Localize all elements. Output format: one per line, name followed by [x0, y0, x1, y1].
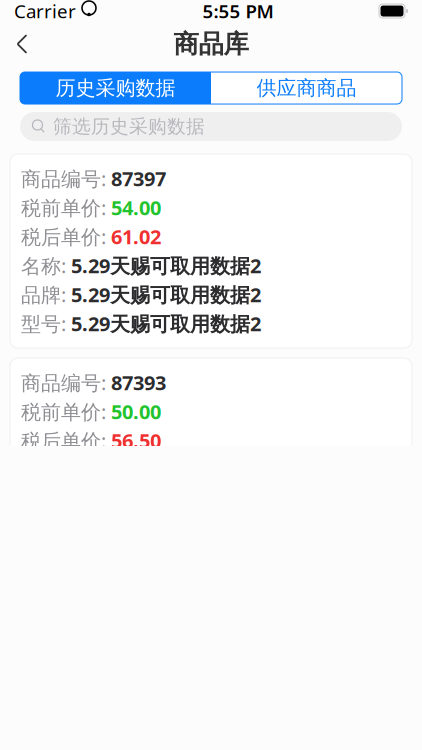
staticText: 61.02 — [111, 223, 161, 250]
staticText: 筛选历史采购数据 — [53, 115, 205, 138]
staticText: 87393 — [111, 369, 166, 396]
button[interactable]: 商品编号: — [10, 358, 412, 552]
staticText: 名称: — [21, 252, 66, 279]
staticText: 5.29天赐可取用数据2 — [71, 281, 261, 308]
staticText: 5.29天赐可取用数据2 — [71, 310, 261, 337]
staticText: 税前单价: — [21, 398, 106, 425]
staticText: 54.00 — [111, 194, 161, 221]
staticText: 商品编号: — [21, 165, 106, 192]
staticText: 品牌: — [21, 281, 66, 308]
staticText: 型号: — [21, 310, 66, 337]
staticText: 税后单价: — [21, 427, 106, 454]
staticText: 商品库 — [173, 28, 248, 59]
staticText: 56.50 — [111, 427, 161, 454]
button[interactable]: 供应商商品 — [211, 72, 402, 104]
button[interactable]: 筛选历史采购数据 — [20, 112, 402, 141]
staticText: 税后单价: — [21, 223, 106, 250]
staticText: 5:55 PM — [202, 0, 273, 23]
staticText: 5.29天赐可取用数据2 — [71, 252, 261, 279]
button[interactable]: 历史采购数据 — [20, 72, 211, 104]
staticText: 商品编号: — [21, 369, 106, 396]
staticText: 历史采购数据 — [55, 76, 175, 100]
staticText: 87397 — [111, 165, 166, 192]
button[interactable]: Back — [0, 24, 44, 64]
staticText: 50.00 — [111, 398, 161, 425]
button[interactable]: 商品编号: — [10, 154, 412, 348]
staticText: 税前单价: — [21, 194, 106, 221]
staticText: Carrier — [14, 0, 76, 23]
staticText: 供应商商品 — [256, 76, 356, 100]
